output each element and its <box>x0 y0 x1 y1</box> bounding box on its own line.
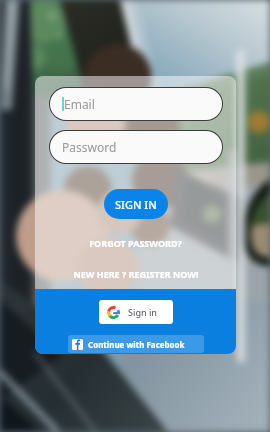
button[interactable]: SIGN IN <box>104 189 168 219</box>
button[interactable]: Email <box>50 88 222 120</box>
button[interactable]: Password <box>50 131 222 163</box>
staticText: SIGN IN <box>115 197 157 212</box>
staticText: Email <box>64 96 95 112</box>
staticText: FORGOT PASSWORD? <box>89 237 182 249</box>
staticText: Continue with Facebook <box>88 339 185 350</box>
staticText: NEW HERE ? REGISTER NOW! <box>73 268 199 280</box>
button[interactable]: Sign in <box>99 300 173 324</box>
staticText: Sign in <box>128 306 158 318</box>
button[interactable]: Continue with Facebook <box>68 335 204 353</box>
button[interactable]: NEW HERE ? REGISTER NOW! <box>35 268 236 280</box>
button[interactable]: FORGOT PASSWORD? <box>35 237 236 249</box>
staticText: Password <box>62 139 117 155</box>
